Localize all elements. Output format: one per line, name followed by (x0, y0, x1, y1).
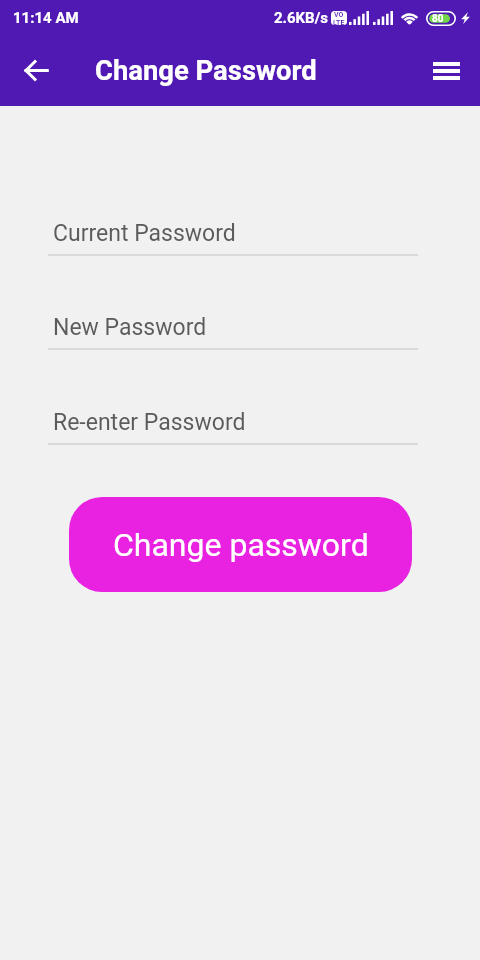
staticText: 11:14 AM (13, 9, 79, 27)
staticText: LTE (333, 19, 345, 25)
button[interactable]: Change password (69, 497, 412, 592)
button[interactable]: Menu (424, 49, 468, 93)
staticText: 2.6KB/s (274, 9, 329, 27)
staticText: Re-enter Password (53, 409, 246, 436)
staticText: New Password (53, 314, 207, 341)
button[interactable]: Re-enter Password (48, 409, 418, 445)
button[interactable]: Current Password (48, 220, 418, 256)
staticText: VO (334, 11, 344, 19)
staticText: 80 (432, 13, 444, 25)
staticText: Change Password (95, 55, 317, 87)
staticText: Current Password (53, 220, 236, 247)
button[interactable]: Back (12, 48, 59, 95)
button[interactable]: New Password (48, 314, 418, 350)
staticText: Change password (113, 526, 369, 564)
